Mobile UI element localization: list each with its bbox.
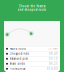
staticText: Choose the fastest xyxy=(18,4,45,8)
staticText: $14.80 xyxy=(47,67,58,70)
button[interactable]: Fastest route xyxy=(4,46,60,51)
staticText: and cheapest route xyxy=(17,8,46,11)
button[interactable]: Cheapest ride xyxy=(4,51,60,56)
button[interactable]: Balanced pick xyxy=(4,56,60,61)
staticText: Fastest route xyxy=(9,47,26,50)
staticText: $9.10 xyxy=(49,57,58,60)
staticText: Share a ride xyxy=(9,62,25,65)
staticText: Balanced pick xyxy=(9,57,27,60)
button[interactable]: Share a ride xyxy=(4,61,60,66)
staticText: $6.25 xyxy=(49,62,58,65)
staticText: $8.40 xyxy=(49,52,58,55)
button[interactable]: Premium car xyxy=(4,66,60,71)
staticText: 12 min xyxy=(48,47,58,50)
staticText: Cheapest ride xyxy=(9,52,29,55)
staticText: Premium car xyxy=(9,67,25,70)
